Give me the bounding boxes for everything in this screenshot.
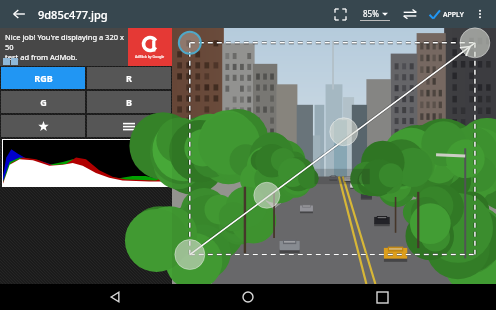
button[interactable]: Nice job! You're displaying a 320 x 50 xyxy=(0,28,172,66)
staticText: APPLY xyxy=(443,10,464,20)
button[interactable]: 85% xyxy=(358,6,392,23)
staticText: 9d85c477.jpg xyxy=(38,7,108,22)
staticText: test ad from AdMob. xyxy=(5,52,78,62)
button[interactable]: RGB xyxy=(1,67,85,89)
button[interactable]: R xyxy=(87,67,171,89)
staticText: G xyxy=(40,96,47,108)
staticText: R xyxy=(126,72,132,84)
button[interactable]: Back xyxy=(6,1,32,27)
staticText: RGB xyxy=(34,72,53,84)
button[interactable]: Compare before after xyxy=(398,2,422,26)
staticText: B xyxy=(126,96,132,108)
staticText: AdMob by Google xyxy=(135,54,165,59)
staticText: 85% xyxy=(363,8,379,19)
button[interactable]: Favorite xyxy=(1,115,85,137)
button[interactable]: APPLY xyxy=(426,8,466,21)
button[interactable]: Recent apps xyxy=(363,284,401,310)
button[interactable]: B xyxy=(87,91,171,113)
button[interactable]: Menu xyxy=(87,115,171,137)
button[interactable]: Fit to screen xyxy=(328,2,352,26)
button[interactable]: Histogram xyxy=(3,140,169,186)
button[interactable]: Back xyxy=(96,284,134,310)
button[interactable]: Home xyxy=(229,284,267,310)
button[interactable]: More options xyxy=(470,4,490,24)
staticText: Nice job! You're displaying a 320 x 50 xyxy=(5,32,125,52)
button[interactable]: G xyxy=(1,91,85,113)
